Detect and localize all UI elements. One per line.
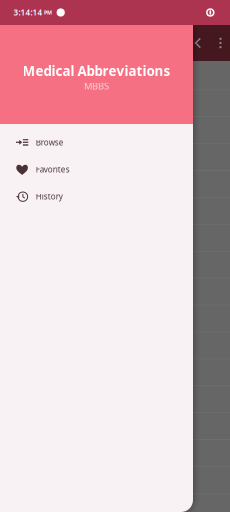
- button[interactable]: Favorites: [0, 156, 193, 183]
- button[interactable]: History: [0, 183, 193, 210]
- staticText: MBBS: [84, 80, 109, 92]
- button[interactable]: More options: [211, 25, 230, 61]
- button[interactable]: Browse: [0, 129, 193, 156]
- staticText: 3:14:14: [13, 7, 42, 18]
- staticText: History: [36, 191, 63, 202]
- button[interactable]: Back: [188, 25, 208, 61]
- staticText: Browse: [36, 137, 64, 148]
- staticText: PM: [44, 9, 52, 16]
- staticText: Medical Abbreviations: [22, 62, 170, 80]
- staticText: Favorites: [36, 164, 70, 175]
